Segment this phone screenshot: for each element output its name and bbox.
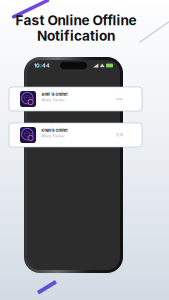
staticText: Whats Tracker — [41, 134, 64, 138]
staticText: Amir is Online! — [41, 92, 67, 97]
button[interactable]: Khan is Online! — [9, 123, 142, 147]
staticText: 12:10 — [116, 133, 123, 137]
staticText: Whats Tracker — [41, 98, 64, 102]
staticText: 10:44 — [34, 62, 50, 69]
staticText: Fast Online Offline — [15, 12, 136, 28]
staticText: now — [116, 97, 123, 101]
staticText: Khan is Online! — [41, 128, 67, 133]
staticText: Notification — [37, 27, 115, 44]
button[interactable]: Amir is Online! — [9, 87, 142, 111]
